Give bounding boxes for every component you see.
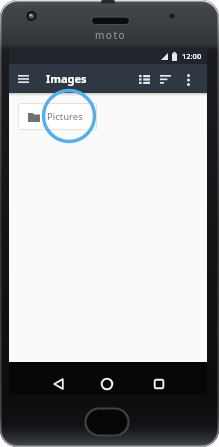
staticText: moto	[95, 28, 127, 42]
button[interactable]	[153, 65, 177, 94]
staticText: Pictures	[47, 110, 83, 123]
button[interactable]	[11, 64, 35, 93]
staticText: Images	[46, 71, 87, 86]
button[interactable]	[46, 367, 70, 400]
button[interactable]	[132, 65, 156, 94]
button[interactable]	[95, 367, 119, 400]
button[interactable]	[176, 65, 200, 94]
button[interactable]: Pictures	[18, 103, 97, 130]
staticText: 12:00	[182, 51, 202, 61]
button[interactable]	[147, 367, 171, 400]
